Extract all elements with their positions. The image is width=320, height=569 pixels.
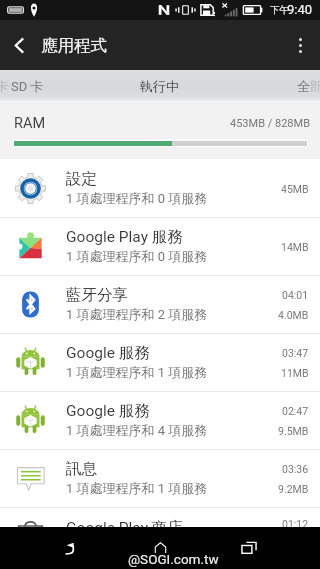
staticText: 9.5MB xyxy=(278,425,309,437)
staticText: 453MB / 828MB xyxy=(230,117,311,130)
staticText: 9:40 xyxy=(287,2,313,17)
staticText: 1 項處理程序和 0 項服務 xyxy=(66,248,208,264)
staticText: 01:12 xyxy=(282,518,309,527)
staticText: 02:47 xyxy=(282,405,309,417)
button[interactable]: Home xyxy=(132,527,188,569)
staticText: SD 卡 xyxy=(11,78,44,94)
staticText: 1 項處理程序和 0 項服務 xyxy=(66,190,208,206)
staticText: 設定 xyxy=(66,169,97,189)
button[interactable]: 執行中 xyxy=(106,70,213,101)
button[interactable]: More options xyxy=(280,20,320,70)
staticText: 全 xyxy=(297,78,310,94)
staticText: Google Play 服務 xyxy=(66,227,183,247)
staticText: 11MB xyxy=(281,367,309,379)
button[interactable]: Google 服務 xyxy=(0,391,320,449)
button[interactable]: Back xyxy=(0,20,38,70)
staticText: 執行中 xyxy=(140,78,179,94)
staticText: 4.0MB xyxy=(278,309,309,321)
staticText: 1 項處理程序和 4 項服務 xyxy=(66,422,208,438)
staticText: 下午 xyxy=(270,4,289,16)
button[interactable]: 藍牙分享 xyxy=(0,275,320,333)
button[interactable]: 訊息 xyxy=(0,449,320,507)
staticText: 藍牙分享 xyxy=(66,285,128,305)
staticText: 1 項處理程序和 1 項服務 xyxy=(66,364,208,380)
button[interactable]: Google Play 服務 xyxy=(0,217,320,275)
button[interactable]: Google 服務 xyxy=(0,333,320,391)
staticText: Google Play 商店 xyxy=(66,518,183,527)
staticText: 9.2MB xyxy=(278,483,309,495)
button[interactable]: 卡 xyxy=(0,70,106,101)
staticText: 1 項處理程序和 1 項服務 xyxy=(66,480,208,496)
staticText: 應用程式 xyxy=(41,35,107,56)
button[interactable]: 設定 xyxy=(0,159,320,217)
staticText: RAM xyxy=(14,115,46,132)
button[interactable]: Recent apps xyxy=(221,527,277,569)
staticText: Google 服務 xyxy=(66,343,150,363)
button[interactable]: 全 xyxy=(213,70,320,101)
staticText: 14MB xyxy=(281,241,309,253)
staticText: 04:01 xyxy=(282,289,309,301)
staticText: 1 項處理程序和 2 項服務 xyxy=(66,306,208,322)
staticText: 03:47 xyxy=(282,347,309,359)
button[interactable]: Back xyxy=(44,527,100,569)
staticText: @SOGI.com.tw xyxy=(128,551,219,567)
button[interactable]: Google Play 商店 xyxy=(0,507,320,527)
staticText: 03:36 xyxy=(282,463,309,475)
staticText: 部 xyxy=(310,78,320,94)
staticText: 卡 xyxy=(0,78,9,94)
staticText: 45MB xyxy=(281,183,309,195)
staticText: Google 服務 xyxy=(66,401,150,421)
staticText: 訊息 xyxy=(66,459,97,479)
